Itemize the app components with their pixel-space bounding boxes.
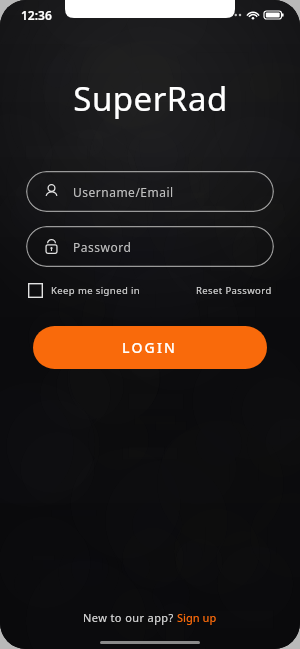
button[interactable]: Reset Password	[196, 284, 272, 297]
staticText: Sign up	[177, 610, 217, 625]
button[interactable]: Sign up	[177, 610, 217, 625]
staticText: New to our app?	[83, 610, 177, 625]
staticText: Keep me signed in	[51, 284, 141, 297]
staticText: SuperRad	[73, 76, 228, 121]
staticText: Username/Email	[73, 184, 174, 200]
staticText: Reset Password	[196, 284, 272, 297]
staticText: Password	[73, 239, 132, 255]
button[interactable]: Keep me signed in	[28, 283, 141, 298]
staticText: LOGIN	[122, 338, 178, 357]
button[interactable]: Password	[26, 226, 274, 267]
button[interactable]: LOGIN	[33, 326, 267, 369]
staticText: 12:36	[21, 7, 52, 23]
button[interactable]: Username or Email	[26, 171, 274, 212]
